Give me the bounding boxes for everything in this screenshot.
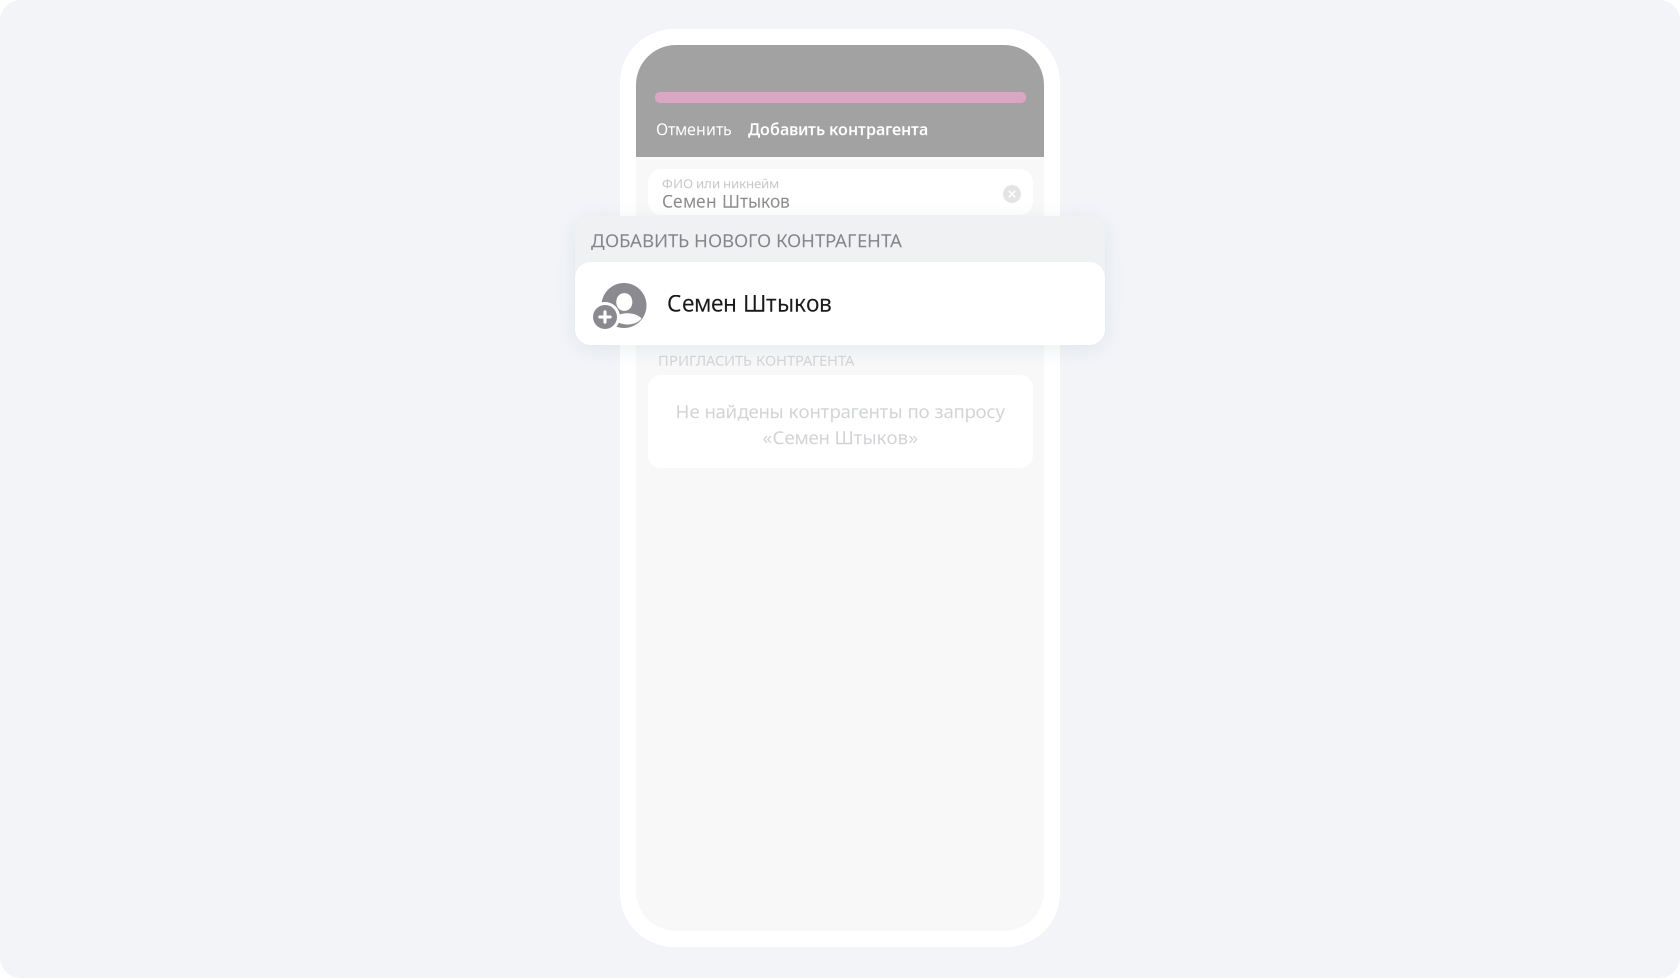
button[interactable]: Отменить bbox=[656, 117, 756, 141]
staticText: ПРИГЛАСИТЬ КОНТРАГЕНТА bbox=[658, 350, 854, 370]
staticText: ФИО или никнейм bbox=[662, 174, 779, 192]
staticText: Отменить bbox=[656, 118, 732, 140]
staticText: «Семен Штыков» bbox=[762, 424, 918, 449]
staticText: ДОБАВИТЬ НОВОГО КОНТРАГЕНТА bbox=[658, 238, 903, 258]
staticText: ДОБАВИТЬ НОВОГО КОНТРАГЕНТА bbox=[591, 228, 902, 252]
staticText: Семен Штыков bbox=[662, 189, 790, 212]
staticText: Добавить контрагента bbox=[748, 118, 928, 140]
staticText: Не найдены контрагенты по запросу bbox=[675, 399, 1005, 423]
button[interactable]: Семен Штыков bbox=[575, 262, 1105, 345]
button[interactable]: Очистить bbox=[1003, 185, 1021, 203]
staticText: Семен Штыков bbox=[667, 288, 832, 318]
